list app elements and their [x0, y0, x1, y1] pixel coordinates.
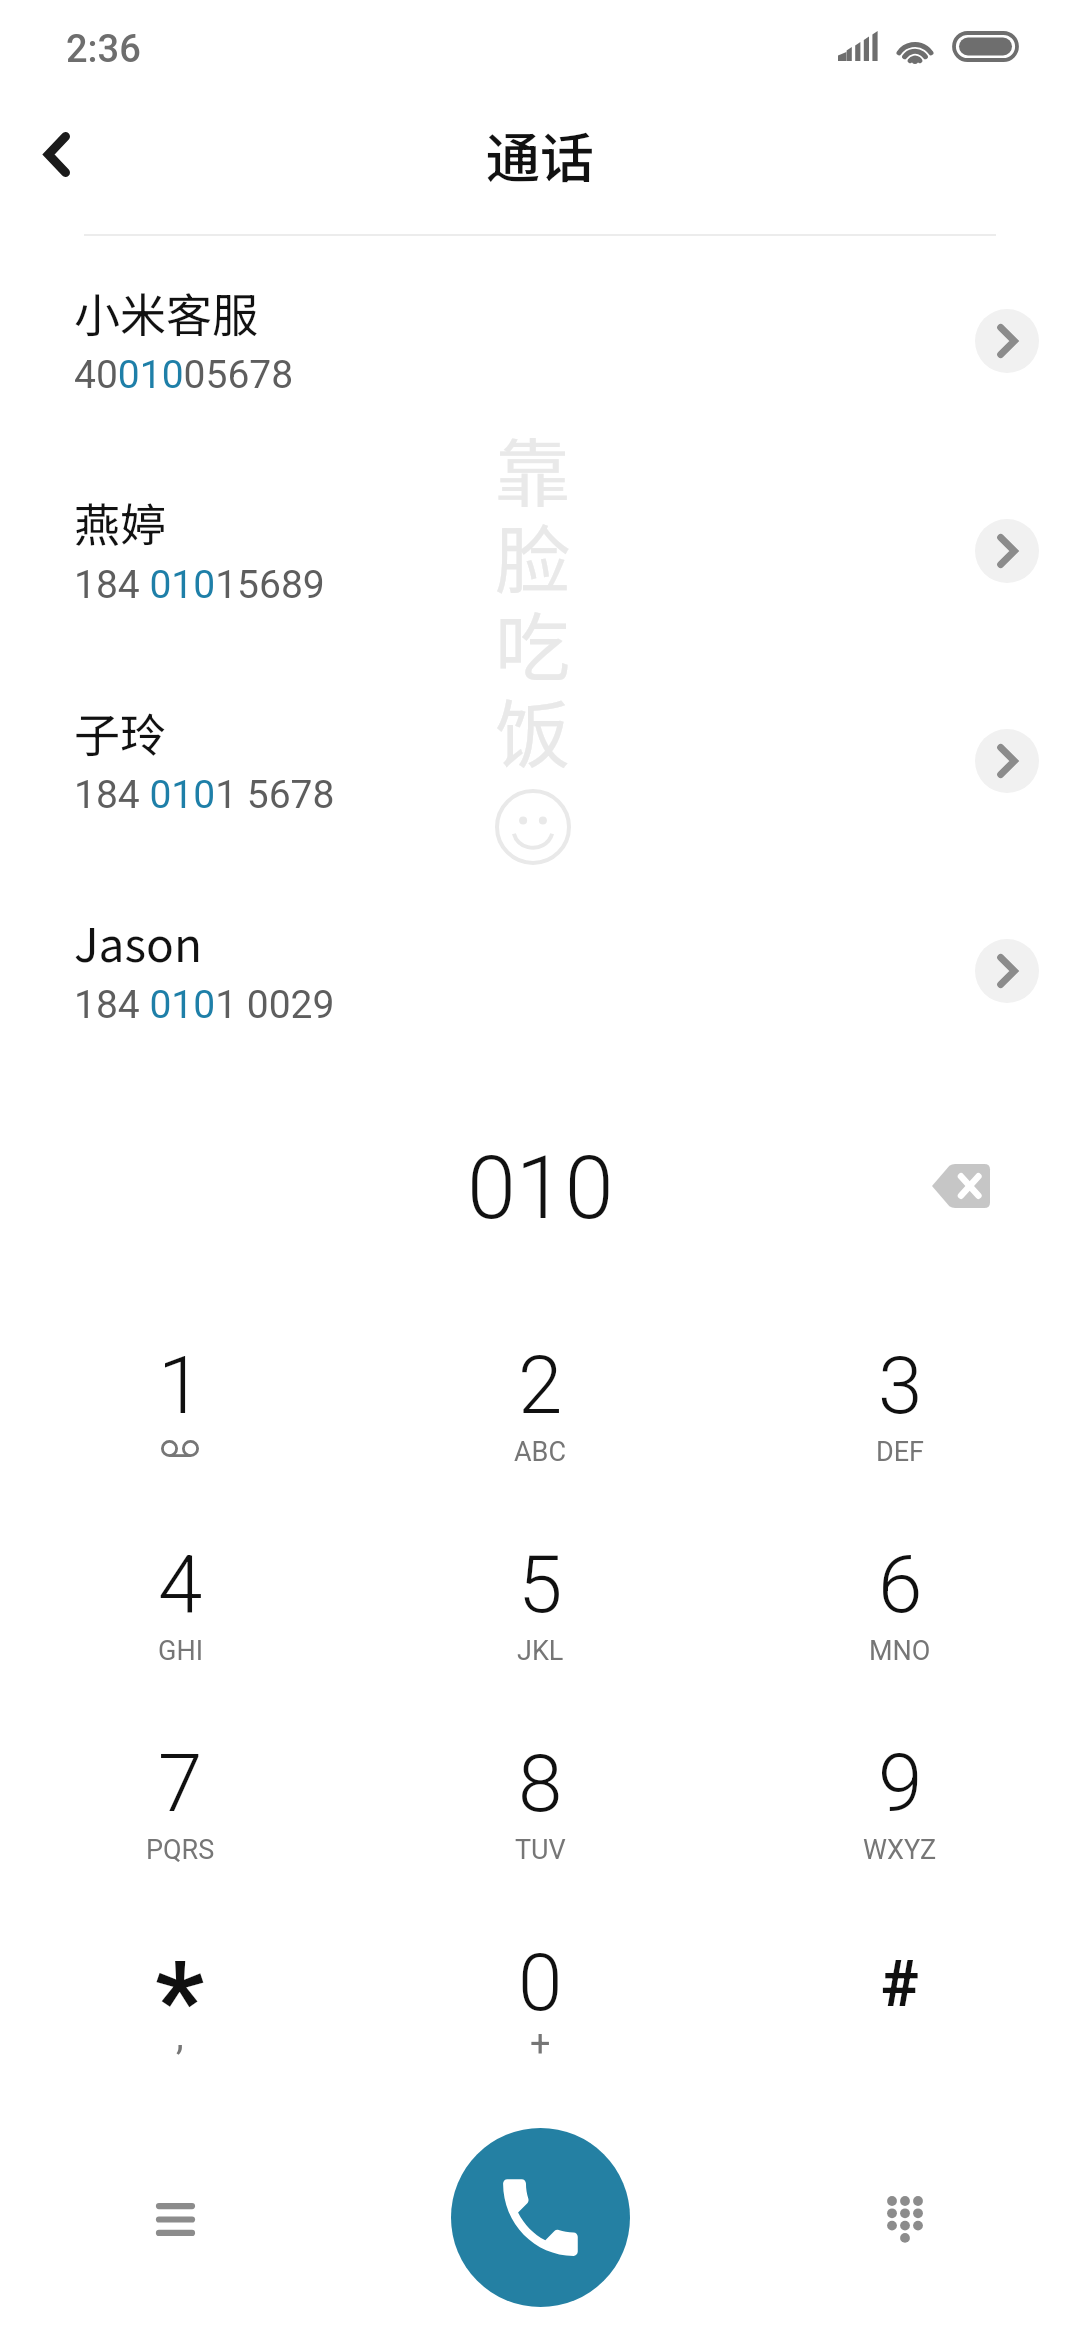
- button[interactable]: 3: [720, 1306, 1080, 1505]
- staticText: 6: [878, 1538, 923, 1632]
- staticText: Jason: [74, 909, 202, 976]
- staticText: JKL: [517, 1635, 564, 1667]
- button[interactable]: Keypad: [855, 2169, 955, 2269]
- button[interactable]: #: [720, 1903, 1080, 2103]
- button[interactable]: 1: [0, 1306, 360, 1505]
- staticText: 7: [158, 1737, 203, 1831]
- staticText: *: [155, 1938, 205, 2065]
- staticText: 8: [518, 1737, 563, 1831]
- button[interactable]: 7: [0, 1704, 360, 1903]
- staticText: 9: [878, 1737, 923, 1831]
- staticText: PQRS: [146, 1834, 215, 1866]
- staticText: 184 01015689: [74, 562, 325, 608]
- button[interactable]: 4: [0, 1505, 360, 1704]
- button[interactable]: Jason: [0, 890, 1080, 1090]
- button[interactable]: 0: [360, 1903, 720, 2103]
- staticText: 4001005678: [74, 352, 294, 398]
- staticText: 2: [518, 1339, 563, 1433]
- button[interactable]: 8: [360, 1704, 720, 1903]
- staticText: 子玲: [74, 699, 166, 766]
- staticText: 3: [878, 1339, 923, 1433]
- staticText: 小米客服: [74, 279, 258, 346]
- button[interactable]: Details: [975, 519, 1039, 583]
- button[interactable]: 6: [720, 1505, 1080, 1704]
- button[interactable]: 2: [360, 1306, 720, 1505]
- button[interactable]: 5: [360, 1505, 720, 1704]
- staticText: 010: [467, 1136, 614, 1239]
- staticText: 饭: [495, 675, 571, 784]
- staticText: 靠: [495, 414, 571, 523]
- button[interactable]: *: [0, 1903, 360, 2103]
- button[interactable]: Delete: [913, 1143, 1009, 1229]
- staticText: #: [881, 1947, 919, 2022]
- staticText: 184 0101 5678: [74, 772, 335, 818]
- staticText: 吃: [495, 588, 571, 697]
- staticText: 1: [158, 1339, 203, 1433]
- button[interactable]: Details: [975, 309, 1039, 373]
- button[interactable]: Back: [7, 104, 107, 204]
- staticText: 燕婷: [74, 489, 166, 556]
- staticText: ABC: [514, 1436, 567, 1468]
- staticText: 2:36: [66, 27, 141, 72]
- staticText: GHI: [158, 1635, 203, 1667]
- staticText: 5: [518, 1538, 563, 1632]
- staticText: 通话: [486, 115, 594, 193]
- button[interactable]: Details: [975, 729, 1039, 793]
- staticText: 184 0101 0029: [74, 982, 335, 1028]
- button[interactable]: 小米客服: [0, 260, 1080, 460]
- staticText: 脸: [495, 501, 571, 610]
- button[interactable]: 燕婷: [0, 470, 1080, 670]
- staticText: TUV: [515, 1834, 566, 1866]
- button[interactable]: Call: [451, 2128, 630, 2307]
- staticText: WXYZ: [863, 1834, 937, 1866]
- staticText: DEF: [876, 1436, 924, 1468]
- staticText: 4: [158, 1538, 203, 1632]
- staticText: +: [530, 2023, 551, 2065]
- button[interactable]: 子玲: [0, 680, 1080, 880]
- button[interactable]: Call log: [125, 2169, 225, 2269]
- staticText: ,: [176, 2013, 184, 2059]
- button[interactable]: Details: [975, 939, 1039, 1003]
- staticText: 0: [518, 1936, 563, 2030]
- button[interactable]: 9: [720, 1704, 1080, 1903]
- staticText: MNO: [869, 1635, 931, 1667]
